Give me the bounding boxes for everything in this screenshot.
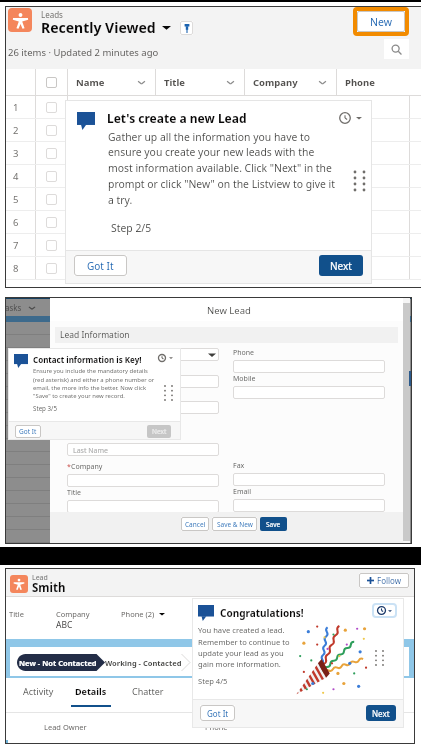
button[interactable]: Prompt options (372, 603, 397, 618)
staticText: 5 (13, 193, 19, 206)
staticText: Chatter (132, 685, 164, 697)
staticText: You have created a lead. Remember to con… (198, 625, 292, 669)
staticText: New (370, 15, 392, 29)
staticText: Next (330, 259, 352, 273)
button[interactable]: Save & New (212, 517, 257, 531)
staticText: Title (9, 609, 24, 619)
button[interactable]: Next (366, 705, 396, 721)
staticText: Gather up all the information you have t… (108, 130, 340, 207)
button[interactable]: Select row 5 (46, 194, 57, 205)
button[interactable] (190, 654, 278, 671)
staticText: Fax (233, 461, 245, 471)
staticText: Name (76, 76, 105, 89)
staticText: Title (67, 488, 81, 498)
button[interactable]: New (357, 11, 405, 32)
staticText: Working - Contacted (105, 658, 182, 668)
staticText: Smith (32, 580, 66, 596)
button[interactable]: Select all (46, 77, 57, 88)
button[interactable]: Activity (18, 685, 58, 707)
staticText: Phone (345, 76, 375, 89)
button[interactable]: Company (245, 69, 336, 96)
staticText: Activity (23, 685, 54, 697)
staticText: Next (372, 708, 390, 719)
staticText: ABC (56, 619, 73, 631)
staticText: 3 (13, 147, 19, 160)
staticText: Email (233, 487, 251, 497)
button[interactable]: Working - Contacted (102, 654, 190, 671)
staticText: Save (266, 520, 281, 529)
button[interactable]: Got It (200, 705, 235, 721)
button[interactable]: Name (68, 69, 155, 96)
staticText: Mobile (233, 374, 256, 384)
staticText: Save & New (217, 520, 253, 529)
staticText: Details (75, 685, 107, 697)
staticText: Got It (207, 708, 229, 719)
staticText: * (67, 462, 71, 472)
staticText: 6 (13, 216, 19, 229)
button[interactable]: Select row 8 (46, 263, 57, 274)
staticText: 2 (13, 124, 19, 137)
staticText: Lead Owner (44, 722, 87, 732)
button[interactable]: Select row 2 (46, 125, 57, 136)
button[interactable]: Select row 1 (46, 102, 57, 113)
staticText: Lead (32, 573, 48, 583)
staticText: New - Not Contacted (19, 658, 97, 668)
staticText: Title (164, 76, 185, 89)
staticText: Got It (19, 427, 37, 436)
button[interactable]: Got It (15, 425, 41, 438)
staticText: Contact information is Key! (33, 354, 142, 365)
staticText: 7 (13, 239, 19, 252)
button[interactable]: Select row 7 (46, 240, 57, 251)
staticText: Company (253, 76, 298, 89)
staticText: Cancel (185, 520, 206, 529)
staticText: Leads (41, 9, 63, 20)
button[interactable]: Got It (74, 255, 127, 276)
staticText: Next (152, 427, 167, 436)
button[interactable]: Search this list (384, 39, 409, 59)
staticText: Let's create a new Lead (107, 110, 247, 126)
staticText: Company (71, 462, 103, 472)
staticText: 26 items · Updated 2 minutes ago (8, 46, 159, 59)
staticText: 4 (13, 170, 19, 183)
button[interactable]: Chatter (128, 685, 168, 707)
staticText: Last Name (73, 446, 109, 456)
button[interactable]: Details (71, 685, 111, 707)
button[interactable]: Phone (337, 69, 417, 96)
staticText: Step 3/5 (33, 404, 57, 412)
staticText: Address (73, 534, 102, 544)
staticText: New Lead (207, 304, 251, 317)
button[interactable]: Select row 3 (46, 148, 57, 159)
staticText: Ensure you include the mandatory details… (33, 367, 160, 399)
button[interactable]: Select row 4 (46, 171, 57, 182)
staticText: Recently Viewed (41, 18, 156, 37)
button[interactable]: New - Not Contacted (17, 654, 105, 671)
staticText: Phone (205, 722, 228, 732)
staticText: Got It (87, 259, 114, 273)
staticText: asks (5, 302, 22, 313)
staticText: Company (56, 609, 90, 619)
staticText: 1 (13, 101, 19, 114)
staticText: Phone (233, 348, 255, 358)
button[interactable]: Save (260, 517, 287, 531)
button[interactable]: Cancel (181, 517, 209, 531)
staticText: Congratulations! (220, 606, 304, 620)
button[interactable]: Select row 6 (46, 217, 57, 228)
button[interactable]: N (185, 685, 209, 707)
button[interactable]: Pin list view (180, 21, 193, 35)
button[interactable]: Next (147, 425, 171, 438)
staticText: Step 4/5 (198, 676, 228, 686)
staticText: Step 2/5 (111, 221, 152, 235)
staticText: Lead Information (60, 329, 130, 341)
staticText: Follow (377, 575, 402, 586)
button[interactable] (278, 654, 366, 671)
staticText: 8 (13, 262, 19, 275)
staticText: Phone (2) (121, 609, 155, 619)
button[interactable]: Title (156, 69, 244, 96)
button[interactable]: Next (319, 255, 363, 276)
button[interactable]: Follow (359, 573, 409, 588)
